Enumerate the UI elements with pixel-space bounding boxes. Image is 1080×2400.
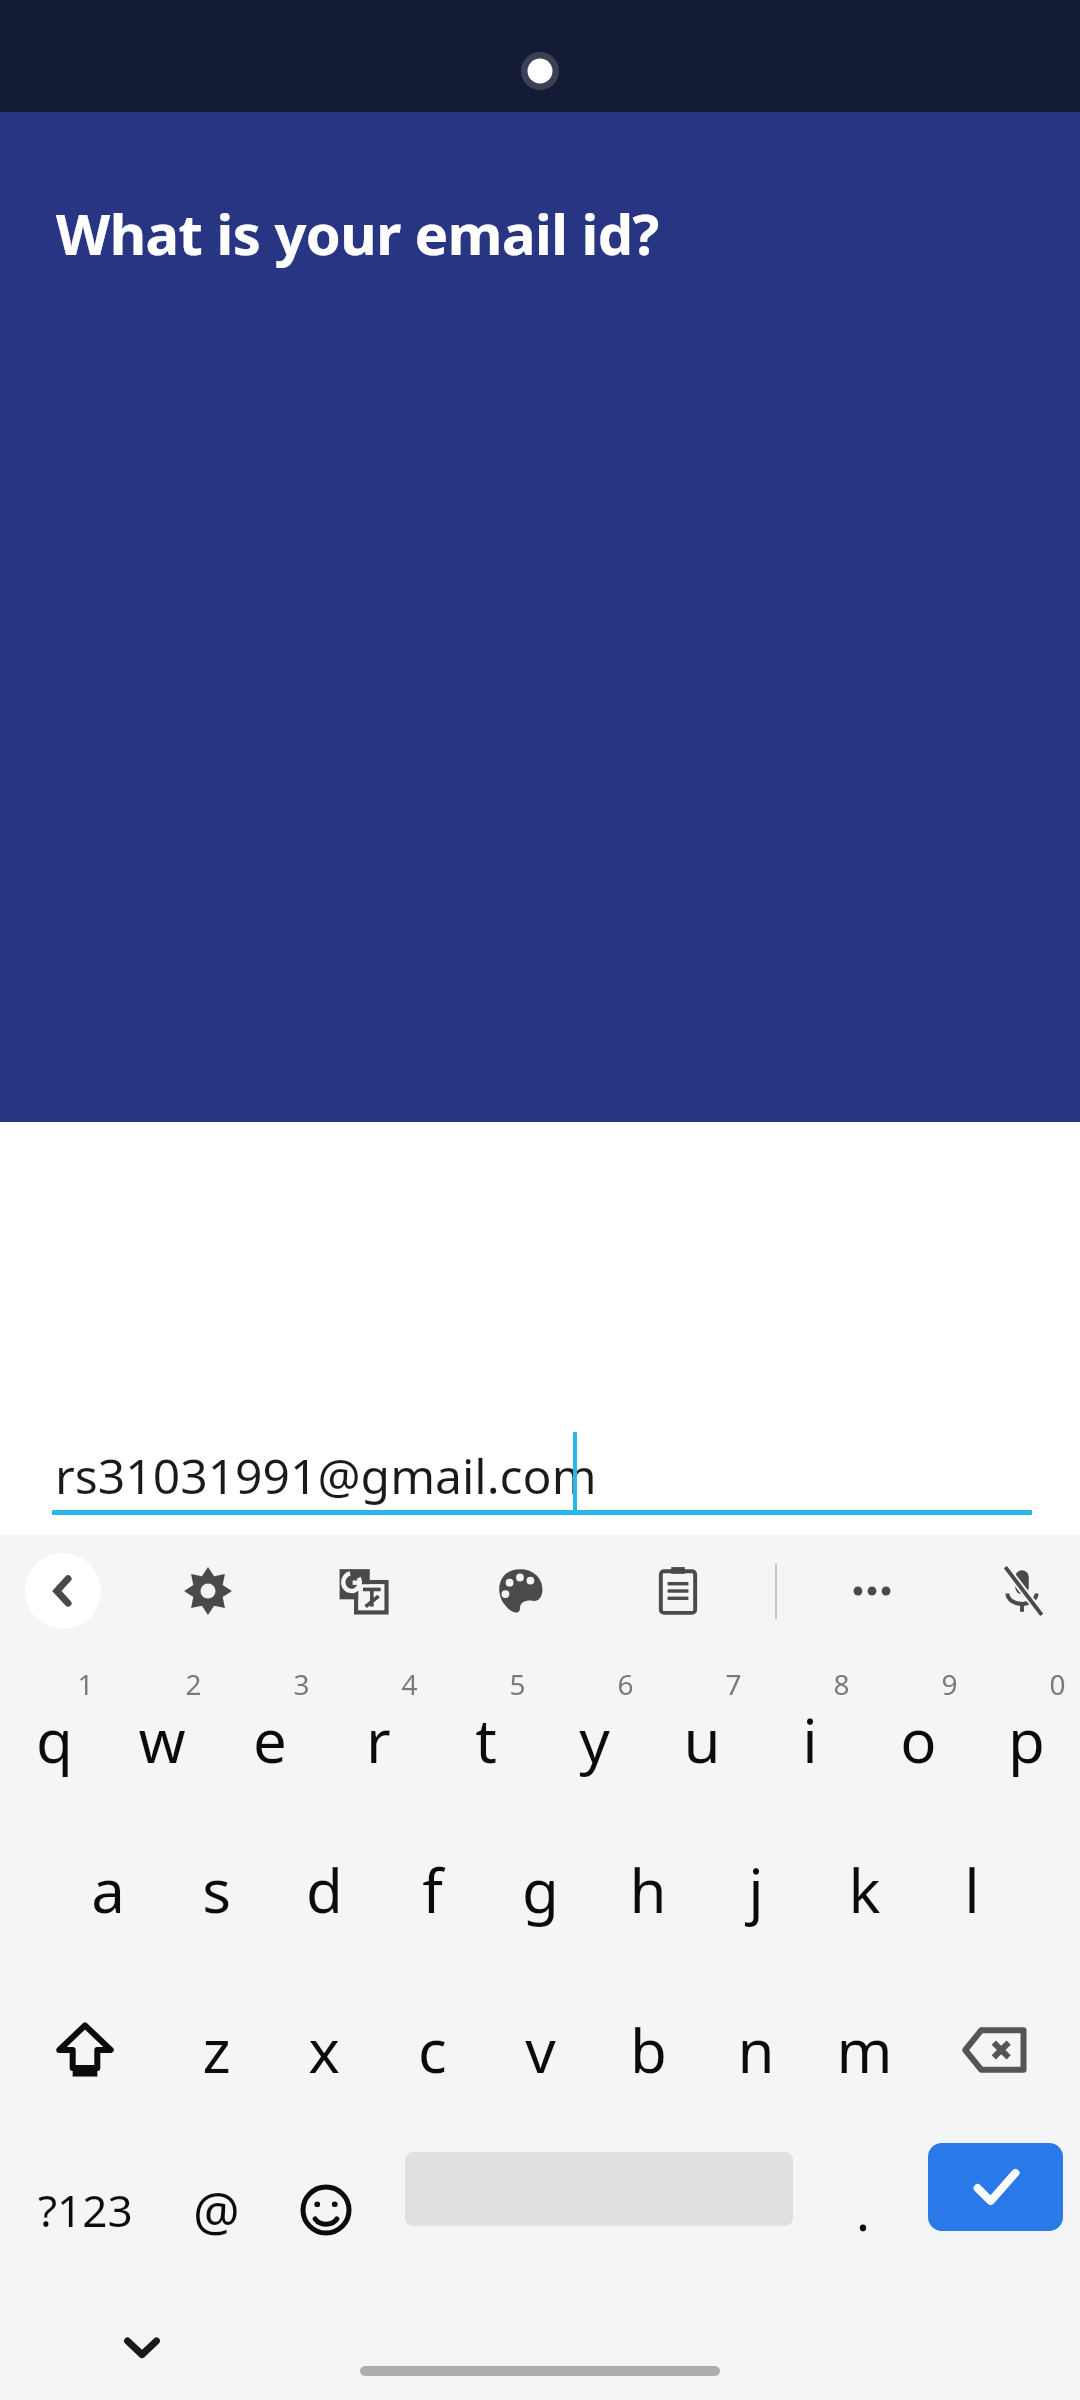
- staticText: b: [630, 2009, 667, 2091]
- button[interactable]: .: [810, 2145, 916, 2275]
- button[interactable]: x: [270, 1985, 378, 2115]
- button[interactable]: Translate: [325, 1553, 401, 1629]
- staticText: 2: [185, 1665, 202, 1703]
- button[interactable]: m: [810, 1985, 918, 2115]
- staticText: y: [579, 1699, 610, 1781]
- button[interactable]: b: [594, 1985, 702, 2115]
- button[interactable]: Emoji: [272, 2145, 380, 2275]
- button[interactable]: Backspace: [940, 1985, 1050, 2115]
- staticText: rs31031991@gmail.com: [55, 1443, 597, 1508]
- button[interactable]: ?123: [10, 2145, 160, 2275]
- staticText: e: [253, 1699, 287, 1781]
- staticText: q: [36, 1699, 73, 1781]
- button[interactable]: v: [486, 1985, 594, 2115]
- button[interactable]: 6: [540, 1651, 648, 1801]
- staticText: z: [202, 2009, 231, 2091]
- button[interactable]: 5: [432, 1651, 540, 1801]
- button[interactable]: h: [594, 1825, 702, 1955]
- button[interactable]: 3: [216, 1651, 324, 1801]
- staticText: j: [748, 1849, 764, 1931]
- button[interactable]: d: [270, 1825, 378, 1955]
- button[interactable]: c: [378, 1985, 486, 2115]
- button[interactable]: g: [486, 1825, 594, 1955]
- button[interactable]: l: [918, 1825, 1026, 1955]
- staticText: @: [193, 2175, 240, 2246]
- button[interactable]: 7: [648, 1651, 756, 1801]
- staticText: d: [306, 1849, 343, 1931]
- staticText: h: [629, 1849, 667, 1931]
- button[interactable]: @: [162, 2145, 270, 2275]
- staticText: k: [848, 1849, 881, 1931]
- button[interactable]: s: [162, 1825, 270, 1955]
- button[interactable]: k: [810, 1825, 918, 1955]
- staticText: g: [522, 1849, 559, 1931]
- staticText: 8: [833, 1665, 850, 1703]
- staticText: 3: [293, 1665, 310, 1703]
- button[interactable]: 8: [756, 1651, 864, 1801]
- staticText: c: [418, 2009, 447, 2091]
- staticText: 0: [1049, 1665, 1066, 1703]
- button[interactable]: f: [378, 1825, 486, 1955]
- staticText: p: [1008, 1699, 1045, 1781]
- button[interactable]: a: [54, 1825, 162, 1955]
- button[interactable]: n: [702, 1985, 810, 2115]
- staticText: s: [202, 1849, 231, 1931]
- button[interactable]: More options: [834, 1553, 910, 1629]
- staticText: a: [91, 1849, 125, 1931]
- staticText: 5: [509, 1665, 526, 1703]
- staticText: l: [964, 1849, 980, 1931]
- button[interactable]: 0: [972, 1651, 1080, 1801]
- staticText: 7: [725, 1665, 742, 1703]
- button[interactable]: 9: [864, 1651, 972, 1801]
- button[interactable]: Settings: [170, 1553, 246, 1629]
- staticText: ?123: [38, 2180, 133, 2240]
- button[interactable]: Theme: [482, 1553, 558, 1629]
- staticText: v: [525, 2009, 556, 2091]
- staticText: x: [308, 2009, 340, 2091]
- staticText: 6: [617, 1665, 634, 1703]
- staticText: .: [856, 2175, 870, 2246]
- staticText: t: [475, 1699, 497, 1781]
- staticText: 4: [401, 1665, 418, 1703]
- staticText: r: [366, 1699, 391, 1781]
- staticText: What is your email id?: [56, 195, 659, 271]
- staticText: 1: [77, 1665, 94, 1703]
- button[interactable]: 2: [108, 1651, 216, 1801]
- button[interactable]: z: [162, 1985, 270, 2115]
- button[interactable]: Clipboard: [640, 1553, 716, 1629]
- button[interactable]: j: [702, 1825, 810, 1955]
- button[interactable]: Voice input off: [984, 1553, 1060, 1629]
- staticText: n: [737, 2009, 775, 2091]
- button[interactable]: 4: [324, 1651, 432, 1801]
- staticText: o: [900, 1699, 937, 1781]
- staticText: w: [138, 1699, 186, 1781]
- staticText: 9: [941, 1665, 958, 1703]
- button[interactable]: Back: [25, 1553, 101, 1629]
- staticText: f: [422, 1849, 443, 1931]
- button[interactable]: Shift: [30, 1985, 140, 2115]
- staticText: m: [836, 2009, 893, 2091]
- staticText: u: [683, 1699, 721, 1781]
- button[interactable]: Hide keyboard: [100, 2305, 184, 2389]
- button[interactable]: 1: [0, 1651, 108, 1801]
- button[interactable]: Done: [928, 2143, 1063, 2231]
- staticText: i: [802, 1699, 818, 1781]
